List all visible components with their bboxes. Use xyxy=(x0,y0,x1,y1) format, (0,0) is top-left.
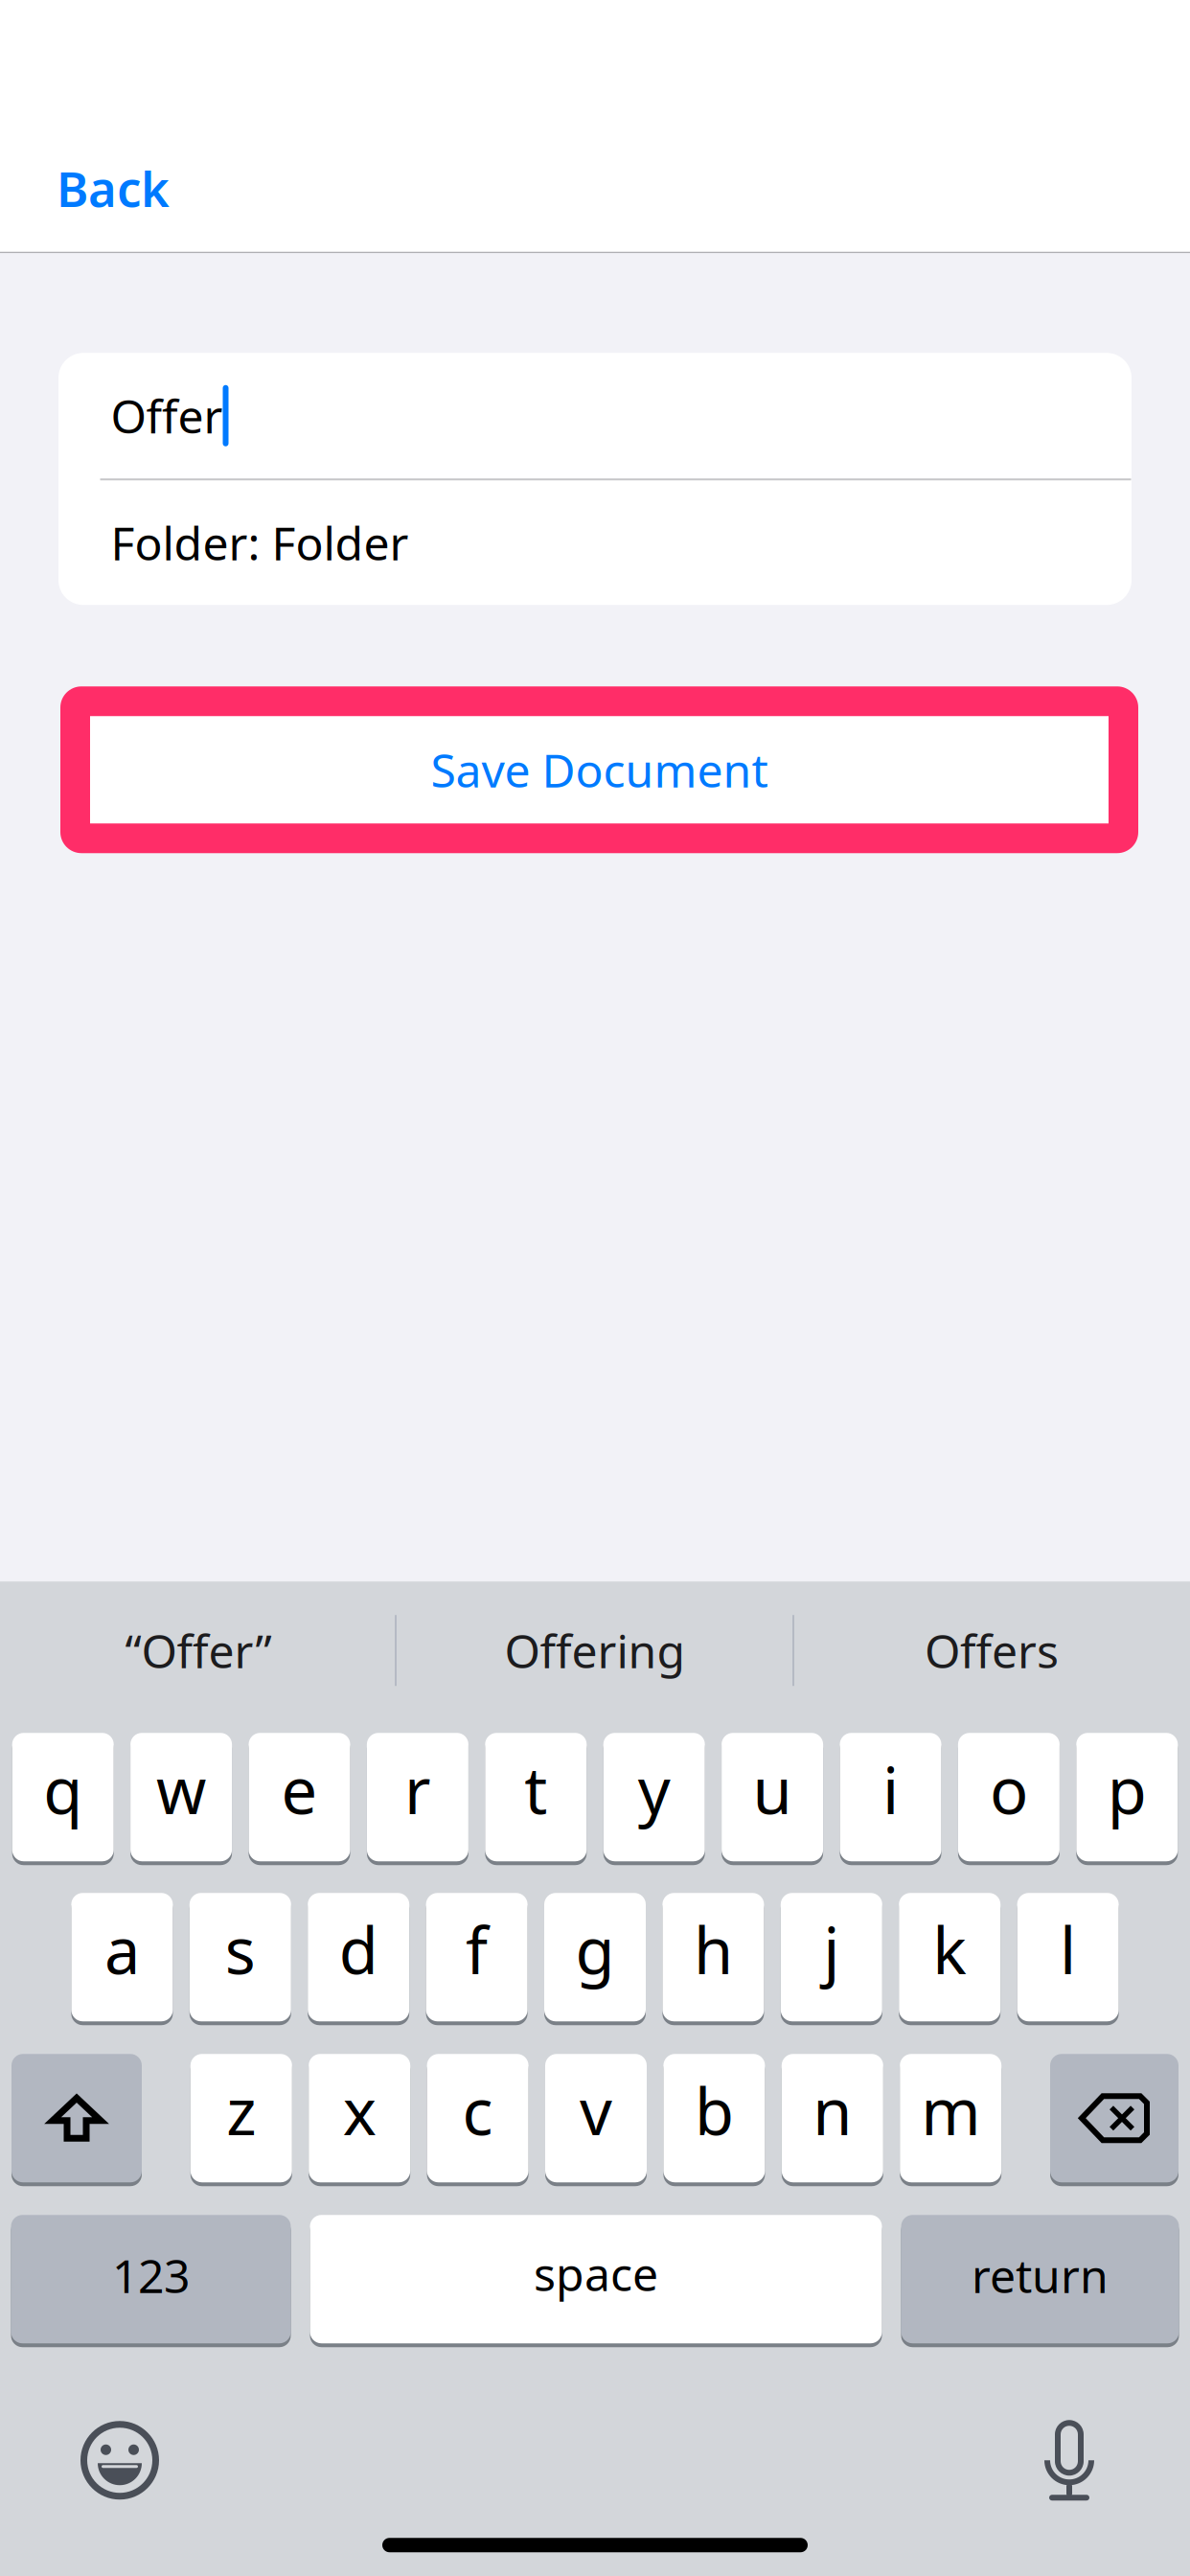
button[interactable]: f xyxy=(426,1893,528,2025)
staticText: t xyxy=(524,1747,547,1832)
button[interactable]: i xyxy=(840,1733,941,1865)
staticText: p xyxy=(1107,1747,1147,1832)
button[interactable]: g xyxy=(544,1893,646,2025)
button[interactable]: c xyxy=(427,2054,529,2186)
button[interactable]: Folder: Folder xyxy=(51,480,1124,605)
staticText: c xyxy=(462,2068,493,2153)
staticText: g xyxy=(575,1907,615,1992)
button[interactable]: Dictation xyxy=(1041,2419,1097,2501)
button[interactable]: Offers xyxy=(793,1615,1190,1686)
button[interactable]: u xyxy=(722,1733,823,1865)
staticText: m xyxy=(921,2068,980,2153)
button[interactable]: b xyxy=(663,2054,765,2186)
staticText: q xyxy=(43,1747,83,1832)
staticText: o xyxy=(990,1747,1028,1832)
button[interactable]: z xyxy=(190,2054,292,2186)
staticText: Offering xyxy=(504,1620,686,1681)
staticText: Save Document xyxy=(431,739,768,800)
button[interactable]: w xyxy=(130,1733,232,1865)
staticText: n xyxy=(813,2068,852,2153)
button[interactable]: return xyxy=(901,2215,1179,2347)
button[interactable]: Back xyxy=(0,0,198,263)
staticText: Folder: Folder xyxy=(111,512,409,573)
button[interactable]: h xyxy=(662,1893,764,2025)
button[interactable]: n xyxy=(782,2054,883,2186)
button[interactable]: Delete xyxy=(1050,2054,1179,2186)
button[interactable]: k xyxy=(899,1893,1000,2025)
staticText: l xyxy=(1060,1907,1076,1992)
button[interactable]: Shift xyxy=(11,2054,142,2186)
button[interactable]: 123 xyxy=(11,2215,291,2347)
staticText: b xyxy=(695,2068,734,2153)
button[interactable]: t xyxy=(485,1733,587,1865)
staticText: a xyxy=(104,1907,140,1992)
staticText: f xyxy=(466,1907,488,1992)
staticText: k xyxy=(932,1907,967,1992)
staticText: space xyxy=(534,2243,658,2304)
staticText: y xyxy=(638,1747,670,1832)
button[interactable]: o xyxy=(958,1733,1060,1865)
button[interactable]: p xyxy=(1076,1733,1178,1865)
staticText: v xyxy=(580,2068,612,2153)
staticText: Offers xyxy=(925,1620,1059,1681)
button[interactable]: j xyxy=(781,1893,882,2025)
button[interactable]: a xyxy=(71,1893,173,2025)
button[interactable]: Offering xyxy=(397,1615,793,1686)
staticText: u xyxy=(753,1747,792,1832)
staticText: return xyxy=(972,2245,1109,2306)
staticText: w xyxy=(156,1747,206,1832)
staticText: d xyxy=(339,1907,378,1992)
button[interactable]: Save Document xyxy=(60,686,1138,853)
button[interactable]: d xyxy=(308,1893,409,2025)
button[interactable]: q xyxy=(12,1733,114,1865)
staticText: x xyxy=(343,2068,376,2153)
staticText: e xyxy=(281,1747,318,1832)
staticText: “Offer” xyxy=(125,1620,272,1681)
button[interactable]: space xyxy=(310,2215,882,2347)
button[interactable]: m xyxy=(900,2054,1001,2186)
button[interactable]: Emoji keyboard xyxy=(80,2421,159,2500)
staticText: r xyxy=(404,1747,431,1832)
staticText: i xyxy=(882,1747,899,1832)
staticText: Back xyxy=(57,156,170,220)
button[interactable]: “Offer” xyxy=(0,1615,397,1686)
button[interactable]: r xyxy=(367,1733,468,1865)
button[interactable]: x xyxy=(309,2054,410,2186)
staticText: h xyxy=(694,1907,733,1992)
button[interactable]: v xyxy=(545,2054,647,2186)
button[interactable]: y xyxy=(603,1733,705,1865)
button[interactable]: e xyxy=(249,1733,350,1865)
staticText: z xyxy=(226,2068,256,2153)
button[interactable]: Offer xyxy=(51,353,1124,478)
button[interactable]: s xyxy=(190,1893,291,2025)
staticText: Offer xyxy=(111,385,223,446)
staticText: j xyxy=(823,1907,840,1992)
staticText: 123 xyxy=(112,2245,190,2306)
button[interactable]: l xyxy=(1017,1893,1119,2025)
staticText: s xyxy=(225,1907,256,1992)
